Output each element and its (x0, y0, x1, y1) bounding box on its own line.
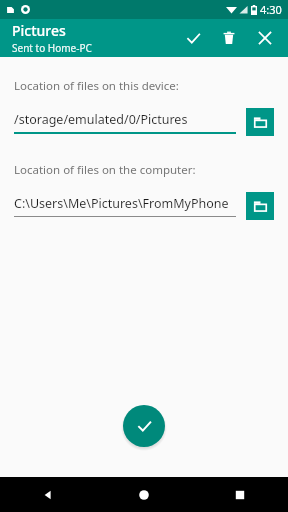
button[interactable]: Close (250, 23, 280, 53)
button[interactable]: Browse folder (246, 108, 274, 136)
staticText: C:\Users\Me\Pictures\FromMyPhone (14, 195, 229, 212)
button[interactable]: Browse folder (246, 192, 274, 220)
button[interactable]: Confirm (178, 23, 208, 53)
button[interactable]: Back (0, 477, 96, 512)
button[interactable]: Recents (192, 477, 288, 512)
staticText: 4:30 (260, 2, 282, 17)
staticText: Location of files on the computer: (14, 162, 196, 178)
button[interactable]: Confirm (123, 405, 165, 447)
staticText: Pictures (12, 21, 66, 40)
button[interactable]: Delete (214, 23, 244, 53)
staticText: Sent to Home-PC (12, 41, 92, 55)
staticText: /storage/emulated/0/Pictures (14, 111, 188, 128)
staticText: Location of files on this device: (14, 78, 179, 94)
button[interactable]: Home (96, 477, 192, 512)
